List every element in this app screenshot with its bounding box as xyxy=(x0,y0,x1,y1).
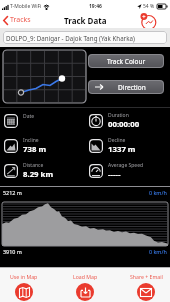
button[interactable]: DOLPO_9: Danigar - Dajok Tang (Yak Khark… xyxy=(3,31,167,44)
staticText: 3910 m xyxy=(3,248,22,255)
button[interactable]: Direction xyxy=(88,80,164,94)
staticText: 0 km/h xyxy=(149,189,167,196)
button[interactable] xyxy=(140,12,158,28)
staticText: Share + Email xyxy=(130,273,163,280)
button[interactable]: Share + Email xyxy=(123,268,169,302)
staticText: 5212 m xyxy=(3,189,22,196)
button[interactable]: Incline xyxy=(4,133,85,158)
staticText: 1337 m xyxy=(108,144,136,155)
staticText: Use in Map xyxy=(10,273,38,280)
staticText: 19:46 xyxy=(89,3,102,10)
button[interactable]: Duration xyxy=(89,108,170,133)
staticText: Date xyxy=(23,113,35,120)
staticText: Track Colour xyxy=(107,57,146,66)
staticText: 54 % xyxy=(143,3,155,10)
staticText: Incline xyxy=(23,137,39,144)
button[interactable]: Date xyxy=(4,108,85,133)
button[interactable]: Use in Map xyxy=(1,268,47,302)
staticText: 8.29 km xyxy=(23,169,54,180)
staticText: 0 km/h xyxy=(149,248,167,255)
staticText: 00:00:00 xyxy=(108,119,140,130)
button[interactable]: Tracks xyxy=(3,15,31,25)
button[interactable]: Load Map xyxy=(62,268,108,302)
staticText: Load Map xyxy=(73,273,98,280)
staticText: Tracks xyxy=(10,15,31,25)
staticText: 738 m xyxy=(23,144,47,155)
staticText: ----- xyxy=(108,169,121,180)
staticText: Average Speed xyxy=(108,162,144,169)
staticText: Direction xyxy=(118,83,146,92)
button[interactable]: Average Speed xyxy=(89,158,170,183)
staticText: T-Mobile WiFi xyxy=(10,3,42,10)
staticText: Distance xyxy=(23,162,44,169)
staticText: DOLPO_9: Danigar - Dajok Tang (Yak Khark… xyxy=(6,34,135,42)
button[interactable]: Distance xyxy=(4,158,85,183)
button[interactable]: Track Colour xyxy=(88,54,164,68)
staticText: Track Data xyxy=(64,15,107,26)
staticText: Duration xyxy=(108,112,129,119)
staticText: Decline xyxy=(108,137,126,144)
button[interactable]: Decline xyxy=(89,133,170,158)
